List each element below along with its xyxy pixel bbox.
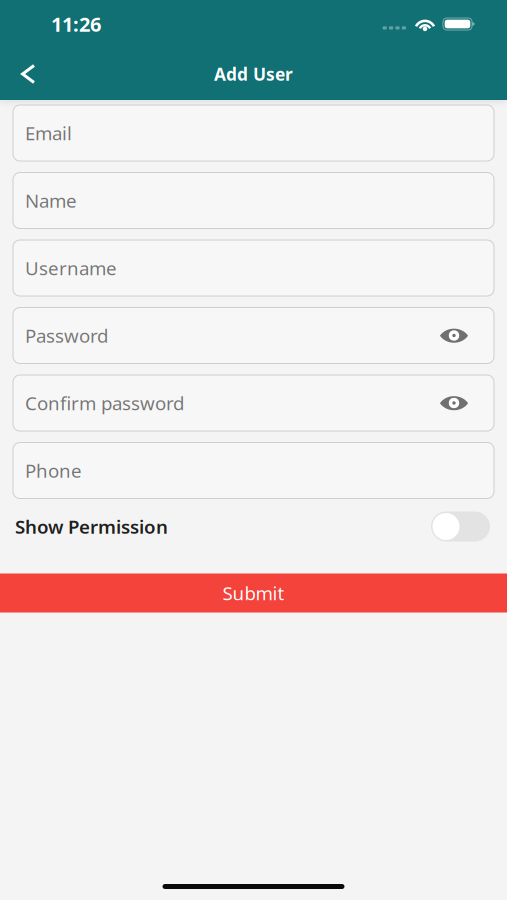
button[interactable]: Show Permission xyxy=(431,511,490,541)
button[interactable]: Show Password xyxy=(432,313,476,357)
staticText: 11:26 xyxy=(51,11,101,37)
staticText: Submit xyxy=(222,581,284,605)
staticText: Password xyxy=(25,323,108,348)
button[interactable]: Show Confirm password xyxy=(432,381,476,425)
staticText: Email xyxy=(25,121,72,145)
staticText: Confirm password xyxy=(25,391,184,415)
staticText: Name xyxy=(25,188,77,213)
button[interactable]: Submit xyxy=(0,573,507,612)
staticText: Show Permission xyxy=(15,514,168,539)
staticText: Add User xyxy=(214,62,293,85)
button[interactable]: Back xyxy=(6,52,50,96)
staticText: Username xyxy=(25,256,117,280)
staticText: Phone xyxy=(25,458,82,483)
